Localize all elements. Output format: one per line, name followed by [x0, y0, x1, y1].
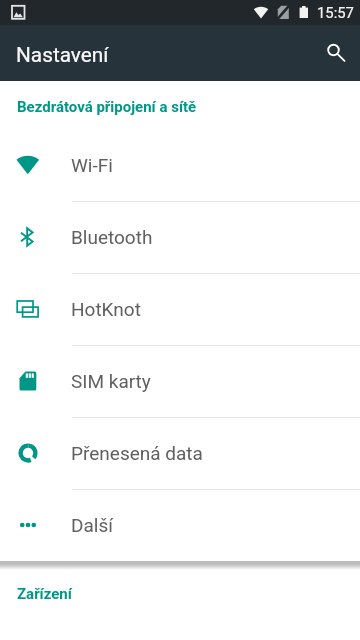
button[interactable]: Search	[312, 29, 360, 77]
button[interactable]: HotKnot	[0, 274, 360, 346]
button[interactable]: SIM karty	[0, 346, 360, 418]
staticText: 15:57	[317, 4, 354, 21]
staticText: Wi-Fi	[71, 154, 113, 176]
staticText: Bezdrátová připojení a sítě	[17, 98, 197, 116]
staticText: HotKnot	[71, 298, 141, 320]
button[interactable]: Wi-Fi	[0, 130, 360, 202]
button[interactable]: Bluetooth	[0, 202, 360, 274]
button[interactable]: Další	[0, 490, 360, 562]
button[interactable]: Přenesená data	[0, 418, 360, 490]
staticText: Další	[71, 514, 113, 536]
staticText: Bluetooth	[71, 226, 153, 248]
staticText: SIM karty	[71, 370, 151, 392]
staticText: Přenesená data	[71, 442, 203, 464]
staticText: Nastavení	[16, 43, 109, 67]
staticText: Zařízení	[17, 585, 72, 603]
